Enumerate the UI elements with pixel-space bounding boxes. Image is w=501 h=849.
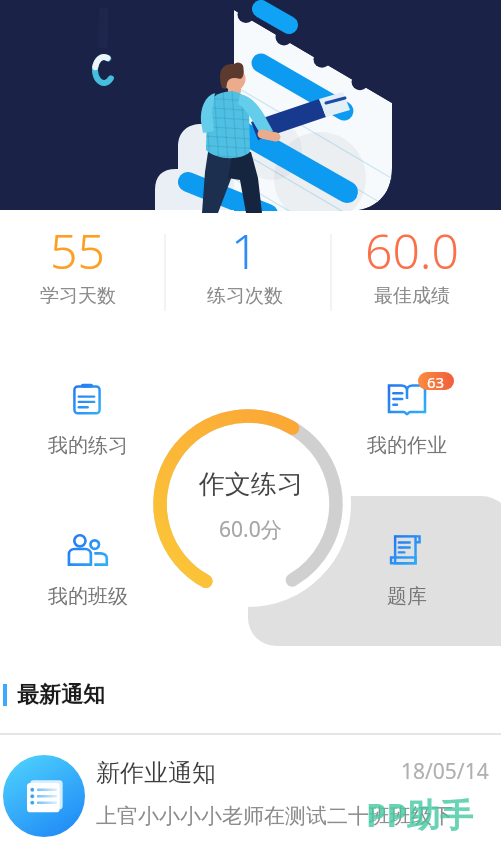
staticText: 我的作业 xyxy=(367,433,447,458)
staticText: 60.0分 xyxy=(219,515,282,544)
button[interactable]: 63 xyxy=(365,382,449,458)
staticText: 18/05/14 xyxy=(401,757,489,786)
staticText: 上官小小小小老师在测试二十班班级下 xyxy=(96,803,453,829)
staticText: 练习次数 xyxy=(207,284,283,308)
staticText: 学习天数 xyxy=(40,284,116,308)
button[interactable]: 题库 xyxy=(365,533,449,609)
button[interactable]: 新作业通知 xyxy=(0,735,501,849)
button[interactable]: 我的练习 xyxy=(46,382,130,458)
staticText: 55 xyxy=(50,218,105,283)
button[interactable]: 1 xyxy=(161,210,328,334)
staticText: 作文练习 xyxy=(199,468,303,501)
button[interactable]: 55 xyxy=(0,210,161,334)
staticText: 题库 xyxy=(387,584,427,609)
staticText: 1 xyxy=(231,218,259,283)
staticText: 我的练习 xyxy=(48,433,128,458)
staticText: 新作业通知 xyxy=(96,758,216,788)
button[interactable]: 60.0 xyxy=(328,210,495,334)
staticText: 我的班级 xyxy=(48,584,128,609)
staticText: PP助手 xyxy=(366,792,473,837)
staticText: 63 xyxy=(427,372,445,390)
staticText: 60.0 xyxy=(365,218,459,283)
staticText: 最佳成绩 xyxy=(374,284,450,308)
staticText: 最新通知 xyxy=(17,681,105,709)
button[interactable]: 我的班级 xyxy=(46,533,130,609)
